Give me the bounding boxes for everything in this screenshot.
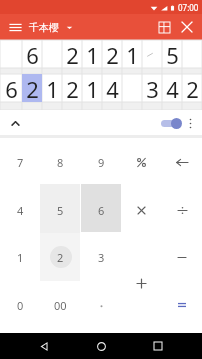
staticText: 2: [186, 74, 199, 102]
button[interactable]: Table options: [154, 17, 174, 37]
button[interactable]: Percent: [121, 138, 161, 186]
staticText: 7: [17, 155, 24, 170]
staticText: 6: [26, 40, 39, 68]
button[interactable]: 4: [0, 186, 40, 234]
button[interactable]: Divide: [162, 186, 202, 234]
staticText: 2: [106, 40, 119, 68]
button[interactable]: Decimal point: [81, 281, 121, 329]
staticText: 1: [46, 74, 59, 102]
button[interactable]: Select sheet: [62, 20, 76, 34]
button[interactable]: Back: [31, 333, 57, 359]
staticText: 1: [126, 40, 139, 68]
staticText: 2: [57, 250, 64, 265]
button[interactable]: 3: [81, 233, 121, 281]
button[interactable]: Toggle: [158, 114, 182, 132]
button[interactable]: More options: [182, 115, 198, 131]
staticText: 4: [166, 74, 179, 102]
staticText: 07:00: [178, 2, 199, 13]
staticText: 3: [146, 74, 159, 102]
button[interactable]: 6: [81, 186, 121, 234]
button[interactable]: Equals: [162, 281, 202, 329]
staticText: 6: [5, 74, 18, 102]
button[interactable]: 00: [40, 281, 80, 329]
button[interactable]: 1: [0, 233, 40, 281]
button[interactable]: Close: [177, 17, 197, 37]
button[interactable]: 2: [40, 233, 80, 281]
button[interactable]: 0: [0, 281, 40, 329]
staticText: 3: [98, 250, 105, 265]
staticText: 2: [26, 74, 39, 102]
button[interactable]: 7: [0, 138, 40, 186]
button[interactable]: Recents: [145, 333, 171, 359]
staticText: 00: [54, 298, 67, 313]
staticText: 2: [66, 40, 79, 68]
staticText: 1: [17, 250, 24, 265]
button[interactable]: 5: [40, 186, 80, 234]
button[interactable]: Home: [88, 333, 114, 359]
staticText: 5: [57, 203, 64, 218]
staticText: 8: [57, 155, 64, 170]
button[interactable]: Menu: [6, 18, 24, 36]
button[interactable]: Backspace: [162, 138, 202, 186]
staticText: 4: [106, 74, 119, 102]
button[interactable]: Multiply: [121, 186, 161, 234]
staticText: 6: [98, 203, 105, 218]
button[interactable]: Add: [121, 259, 161, 307]
staticText: 1: [86, 74, 99, 102]
button[interactable]: 8: [40, 138, 80, 186]
staticText: 4: [17, 203, 24, 218]
button[interactable]: Subtract: [162, 233, 202, 281]
staticText: 2: [66, 74, 79, 102]
button[interactable]: Collapse: [6, 114, 24, 132]
staticText: 0: [17, 298, 24, 313]
button[interactable]: 9: [81, 138, 121, 186]
staticText: 9: [98, 155, 105, 170]
staticText: 5: [166, 40, 179, 68]
staticText: 1: [86, 40, 99, 68]
staticText: 千本櫻: [29, 21, 59, 34]
